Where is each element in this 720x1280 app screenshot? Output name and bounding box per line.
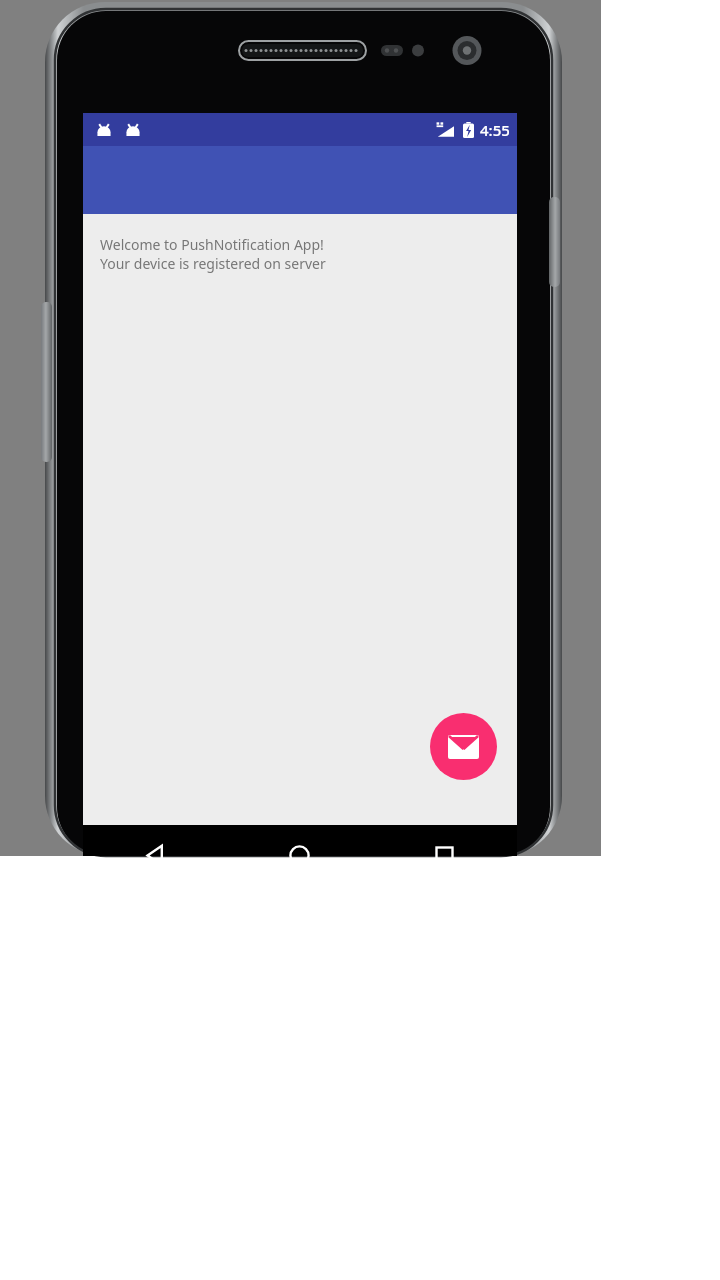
button[interactable]: Recent apps [372,825,517,856]
staticText: 4:55 [480,120,510,140]
button[interactable]: Back [83,825,227,856]
button[interactable]: Home [227,825,372,856]
staticText: Your device is registered on server [100,254,326,273]
staticText: Welcome to PushNotification App! [100,235,324,254]
button[interactable]: Send notification [430,713,497,780]
